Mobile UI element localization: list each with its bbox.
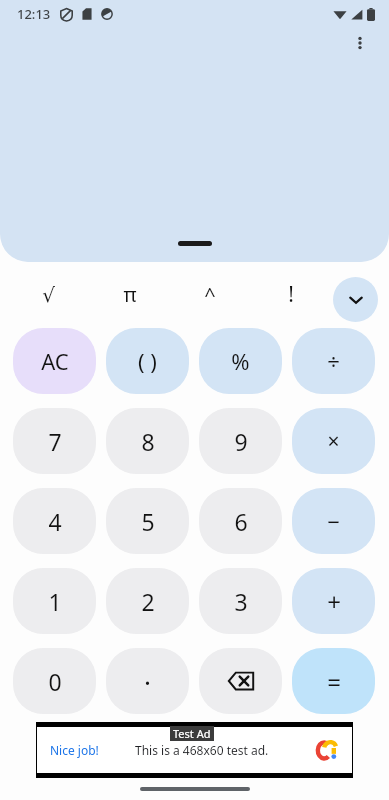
button[interactable]: ^ — [176, 272, 244, 316]
staticText: − — [327, 506, 340, 536]
staticText: Test Ad — [173, 726, 211, 741]
button[interactable]: ( ) — [106, 328, 189, 394]
button[interactable]: ÷ — [292, 328, 375, 394]
staticText: √ — [42, 283, 55, 306]
staticText: × — [327, 427, 340, 456]
staticText: % — [231, 346, 250, 376]
staticText: ! — [288, 280, 294, 309]
staticText: Nice job! — [50, 742, 99, 758]
staticText: π — [123, 281, 137, 308]
button[interactable]: 2 — [106, 568, 189, 634]
button[interactable]: 0 — [13, 648, 96, 714]
button[interactable]: ! — [257, 272, 325, 316]
button[interactable]: 3 — [199, 568, 282, 634]
staticText: 9 — [234, 426, 248, 457]
button[interactable]: Show more functions — [333, 277, 378, 322]
staticText: + — [327, 585, 341, 618]
staticText: 12:13 — [17, 5, 51, 23]
staticText: 2 — [141, 586, 155, 617]
button[interactable]: 9 — [199, 408, 282, 474]
button[interactable]: − — [292, 488, 375, 554]
button[interactable]: More options — [339, 22, 381, 64]
staticText: 1 — [48, 586, 62, 617]
staticText: ^ — [204, 281, 216, 308]
button[interactable]: 7 — [13, 408, 96, 474]
staticText: = — [327, 665, 341, 698]
button[interactable]: Nice job! — [37, 727, 352, 773]
staticText: 4 — [48, 506, 62, 537]
button[interactable]: 1 — [13, 568, 96, 634]
button[interactable]: 5 — [106, 488, 189, 554]
staticText: 8 — [141, 426, 155, 457]
button[interactable]: · — [106, 648, 189, 714]
staticText: 6 — [234, 506, 248, 537]
button[interactable]: 6 — [199, 488, 282, 554]
staticText: 5 — [141, 506, 155, 537]
button[interactable]: Expand history — [178, 241, 212, 246]
button[interactable]: × — [292, 408, 375, 474]
button[interactable]: 4 — [13, 488, 96, 554]
staticText: 7 — [48, 426, 62, 457]
button[interactable]: AC — [13, 328, 96, 394]
button[interactable]: = — [292, 648, 375, 714]
staticText: ÷ — [327, 346, 340, 376]
staticText: AC — [41, 346, 69, 376]
staticText: ( ) — [138, 346, 157, 376]
staticText: 3 — [234, 586, 248, 617]
staticText: · — [144, 664, 151, 699]
button[interactable]: % — [199, 328, 282, 394]
button[interactable]: √ — [14, 272, 82, 316]
button[interactable]: 8 — [106, 408, 189, 474]
staticText: 0 — [48, 666, 62, 697]
staticText: This is a 468x60 test ad. — [135, 742, 269, 758]
button[interactable]: Backspace — [199, 648, 282, 714]
button[interactable]: + — [292, 568, 375, 634]
button[interactable]: π — [96, 272, 164, 316]
